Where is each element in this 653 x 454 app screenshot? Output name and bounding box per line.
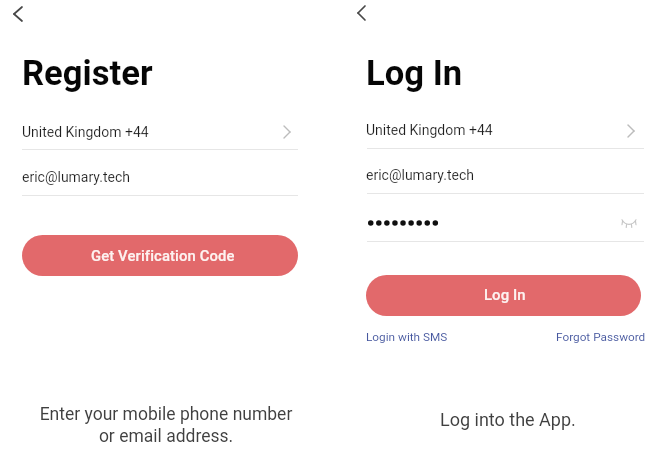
button[interactable]: Forgot Password xyxy=(556,330,646,344)
button[interactable]: Back xyxy=(4,0,32,31)
button[interactable]: United Kingdom +44 xyxy=(366,118,643,147)
staticText: Log In xyxy=(484,286,526,303)
button[interactable]: Get Verification Code xyxy=(22,235,298,276)
button[interactable]: Log In xyxy=(366,275,641,316)
staticText: eric@lumary.tech xyxy=(22,169,130,185)
staticText: Log into the App. xyxy=(440,409,576,430)
staticText: United Kingdom +44 xyxy=(22,124,149,140)
staticText: Enter your mobile phone number or email … xyxy=(20,404,312,447)
staticText: Register xyxy=(22,53,153,94)
staticText: United Kingdom +44 xyxy=(366,122,493,138)
staticText: Get Verification Code xyxy=(91,247,235,264)
button[interactable]: eric@lumary.tech xyxy=(22,165,298,194)
staticText: eric@lumary.tech xyxy=(366,167,474,183)
button[interactable]: United Kingdom +44 xyxy=(22,119,298,148)
staticText: Log In xyxy=(366,53,463,94)
button[interactable] xyxy=(366,212,643,234)
button[interactable]: eric@lumary.tech xyxy=(366,164,643,193)
button[interactable]: Back xyxy=(348,0,375,30)
button[interactable]: Show password xyxy=(613,210,645,236)
button[interactable]: Login with SMS xyxy=(366,330,448,344)
